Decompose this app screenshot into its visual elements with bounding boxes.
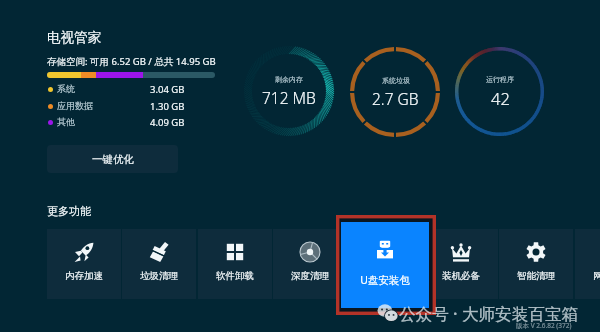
staticText: 其他: [57, 116, 75, 127]
staticText: 装机必备: [424, 270, 498, 282]
staticText: 网络加速: [575, 270, 600, 282]
button[interactable]: 深度清理: [273, 229, 347, 299]
staticText: 垃圾清理: [122, 270, 196, 282]
button[interactable]: 装机必备: [424, 229, 498, 299]
button[interactable]: 一键优化: [47, 145, 178, 173]
staticText: 深度清理: [273, 270, 347, 282]
staticText: 软件卸载: [198, 270, 272, 282]
staticText: 智能清理: [499, 270, 573, 282]
staticText: 2.7 GB: [372, 88, 419, 109]
staticText: 更多功能: [47, 204, 91, 218]
staticText: 712 MB: [262, 87, 316, 108]
staticText: 内存加速: [47, 270, 121, 282]
staticText: 4.09 GB: [150, 116, 185, 129]
staticText: 公众号 · 大师安装百宝箱: [399, 302, 579, 325]
button[interactable]: 网络加速: [575, 229, 600, 299]
staticText: 运行程序: [486, 75, 514, 84]
staticText: 剩余内存: [275, 75, 303, 84]
staticText: 系统: [57, 83, 75, 94]
staticText: 存储空间: 可用 6.52 GB / 总共 14.95 GB: [47, 55, 216, 68]
staticText: 一键优化: [92, 153, 134, 166]
staticText: 3.04 GB: [150, 83, 185, 96]
staticText: 1.30 GB: [150, 100, 185, 113]
button[interactable]: 智能清理: [499, 229, 573, 299]
staticText: 系统垃圾: [382, 76, 410, 85]
staticText: U盘安装包: [341, 273, 429, 287]
staticText: 应用数据: [57, 100, 93, 111]
button[interactable]: 内存加速: [47, 229, 121, 299]
staticText: 版本 V 2.6.82 (372): [516, 321, 572, 330]
staticText: 42: [491, 87, 510, 109]
button[interactable]: 软件卸载: [198, 229, 272, 299]
staticText: 电视管家: [47, 29, 101, 46]
button[interactable]: 垃圾清理: [122, 229, 196, 299]
button[interactable]: U盘安装包: [336, 215, 436, 315]
